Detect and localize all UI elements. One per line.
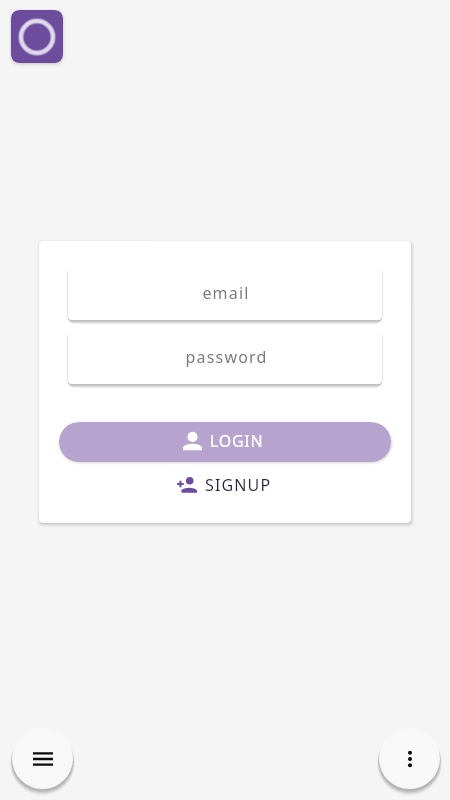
staticText: SIGNUP — [205, 474, 272, 496]
button[interactable]: More options — [379, 728, 440, 789]
button[interactable]: LOGIN — [59, 422, 391, 462]
staticText: LOGIN — [210, 430, 264, 452]
button[interactable]: email — [68, 265, 382, 320]
button[interactable]: Menu — [12, 728, 73, 789]
staticText: password — [185, 346, 268, 368]
button[interactable]: Logo — [11, 10, 63, 63]
button[interactable]: SIGNUP — [166, 467, 285, 501]
staticText: email — [202, 282, 250, 304]
button[interactable]: password — [68, 329, 382, 384]
